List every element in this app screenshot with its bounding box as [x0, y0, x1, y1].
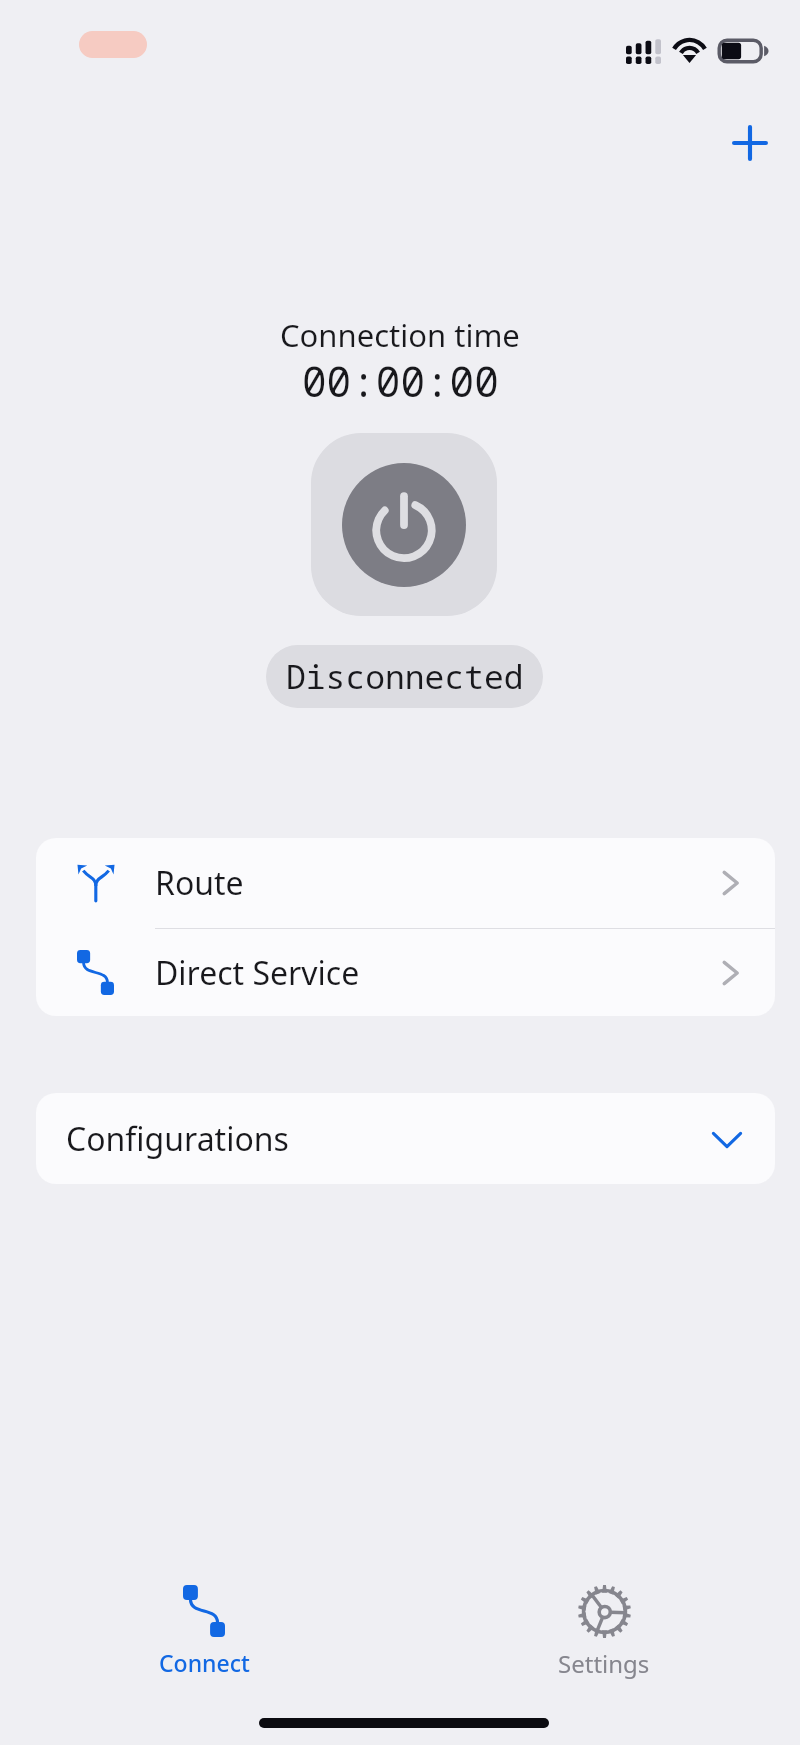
button[interactable]: Settings: [404, 1560, 800, 1685]
staticText: Route: [155, 861, 244, 905]
staticText: Configurations: [66, 1117, 289, 1161]
button[interactable]: Connect: [311, 433, 497, 616]
button[interactable]: Configurations: [36, 1093, 775, 1184]
staticText: Connect: [159, 1647, 250, 1678]
staticText: 00:00:00: [302, 353, 499, 409]
button[interactable]: Route: [36, 838, 775, 928]
staticText: Disconnected: [286, 654, 524, 699]
button[interactable]: Direct Service: [36, 929, 775, 1016]
button[interactable]: Add configuration: [714, 107, 786, 179]
staticText: Direct Service: [155, 951, 360, 995]
staticText: Connection time: [280, 314, 520, 356]
button[interactable]: Connect: [4, 1560, 404, 1685]
staticText: Settings: [558, 1647, 650, 1680]
